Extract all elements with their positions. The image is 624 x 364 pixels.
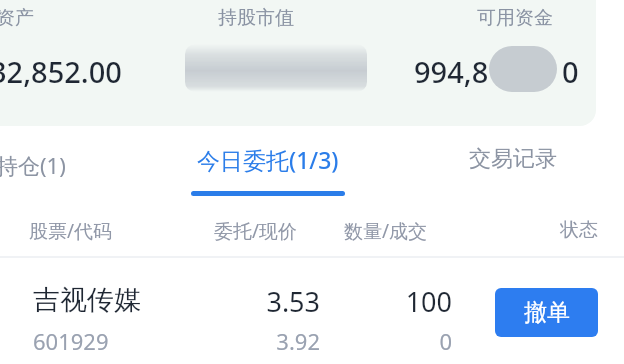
staticText: 撤单: [524, 298, 570, 327]
staticText: 3.53: [200, 283, 320, 320]
staticText: 吉视传媒: [33, 283, 141, 317]
staticText: 3.92: [200, 326, 320, 356]
staticText: 持仓(1): [0, 150, 66, 180]
staticText: 100: [332, 283, 452, 320]
staticText: 委托/现价: [214, 218, 298, 244]
staticText: 状态: [560, 218, 598, 242]
staticText: 601929: [33, 326, 109, 356]
staticText: 今日委托(1/3): [197, 144, 339, 175]
staticText: 32,852.00: [0, 52, 122, 91]
staticText: 持股市值: [218, 6, 294, 30]
button[interactable]: 交易记录: [430, 126, 596, 204]
staticText: 0: [332, 326, 452, 356]
button[interactable]: 撤单: [495, 288, 598, 337]
staticText: 股票/代码: [29, 218, 113, 244]
button[interactable]: 持仓(1): [0, 126, 96, 204]
staticText: 0: [562, 52, 579, 91]
staticText: 交易记录: [469, 145, 557, 173]
staticText: 资产: [0, 6, 34, 30]
staticText: 数量/成交: [344, 218, 428, 244]
button[interactable]: 今日委托(1/3): [170, 126, 366, 204]
staticText: 994,8: [414, 52, 489, 91]
button[interactable]: 吉视传媒: [0, 258, 624, 364]
staticText: 可用资金: [477, 6, 553, 30]
